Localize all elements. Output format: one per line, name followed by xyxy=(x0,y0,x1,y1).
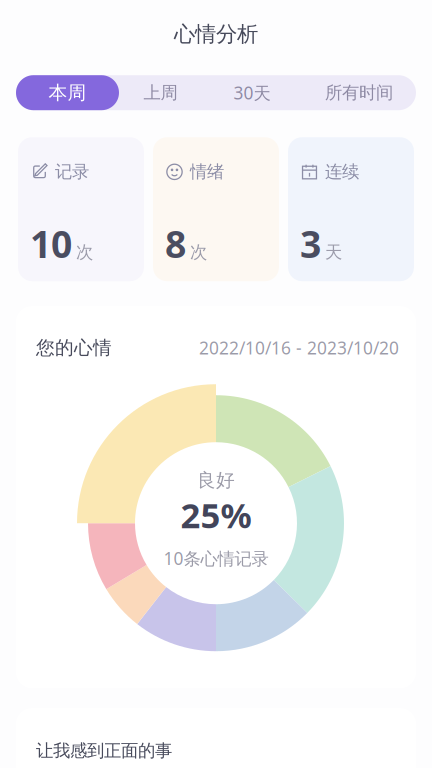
staticText: 25% xyxy=(180,492,251,538)
staticText: 10条心情记录 xyxy=(163,547,268,570)
staticText: 8 xyxy=(165,219,186,268)
staticText: 天 xyxy=(325,241,342,263)
staticText: 情绪 xyxy=(190,161,224,182)
staticText: 次 xyxy=(76,241,93,263)
staticText: 所有时间 xyxy=(325,82,393,103)
staticText: 次 xyxy=(190,241,207,263)
button[interactable]: 连续 xyxy=(288,137,414,281)
staticText: 本周 xyxy=(48,81,86,104)
staticText: 让我感到正面的事 xyxy=(36,740,172,761)
button[interactable]: 情绪 xyxy=(153,137,279,281)
staticText: 上周 xyxy=(143,82,177,103)
staticText: 心情分析 xyxy=(174,21,258,47)
staticText: 良好 xyxy=(197,469,235,492)
staticText: 10 xyxy=(30,219,72,268)
staticText: 连续 xyxy=(325,161,359,182)
staticText: 30天 xyxy=(233,81,270,104)
button[interactable]: 所有时间 xyxy=(302,75,416,110)
button[interactable]: 上周 xyxy=(119,75,202,110)
button[interactable]: 30天 xyxy=(202,75,302,110)
staticText: 3 xyxy=(300,219,321,268)
button[interactable]: 本周 xyxy=(16,75,119,110)
staticText: 2022/10/16 - 2023/10/20 xyxy=(199,336,399,359)
staticText: 您的心情 xyxy=(36,336,112,359)
staticText: 记录 xyxy=(55,161,89,182)
button[interactable]: 记录 xyxy=(18,137,144,281)
